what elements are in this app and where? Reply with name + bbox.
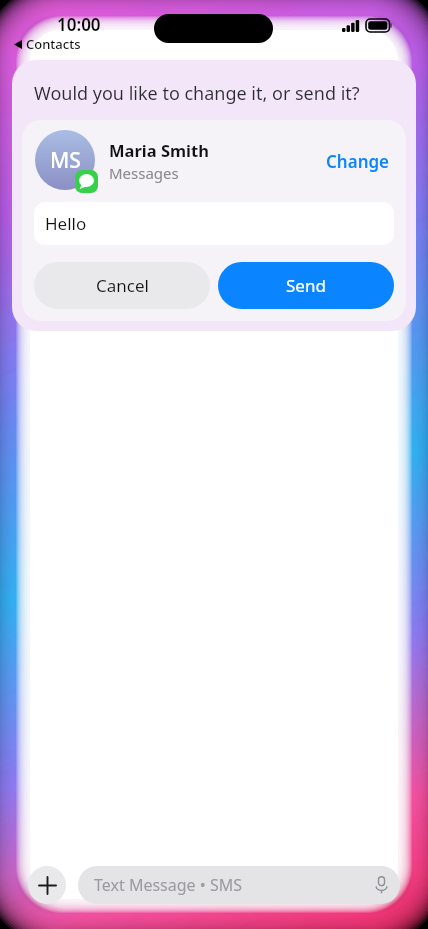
staticText: Would you like to change it, or send it? [34, 81, 360, 106]
button[interactable]: Add attachment [28, 866, 66, 904]
button[interactable]: Contacts [12, 33, 83, 55]
staticText: Text Message • SMS [94, 874, 243, 896]
other: Dictate [374, 876, 389, 894]
staticText: MS [50, 146, 81, 175]
button[interactable]: Send [218, 262, 394, 309]
staticText: Hello [45, 212, 87, 235]
staticText: Contacts [26, 35, 81, 53]
staticText: 10:00 [57, 13, 101, 36]
button[interactable]: Text Message • SMS [78, 866, 400, 904]
button[interactable]: MS [22, 120, 406, 202]
staticText: Maria Smith [109, 139, 209, 161]
button[interactable]: Change [310, 140, 406, 183]
button[interactable]: Cancel [34, 262, 210, 309]
staticText: Send [286, 274, 326, 297]
staticText: Messages [109, 163, 179, 183]
button[interactable]: Hello [34, 202, 394, 245]
staticText: Cancel [96, 274, 149, 297]
staticText: Change [326, 150, 390, 173]
